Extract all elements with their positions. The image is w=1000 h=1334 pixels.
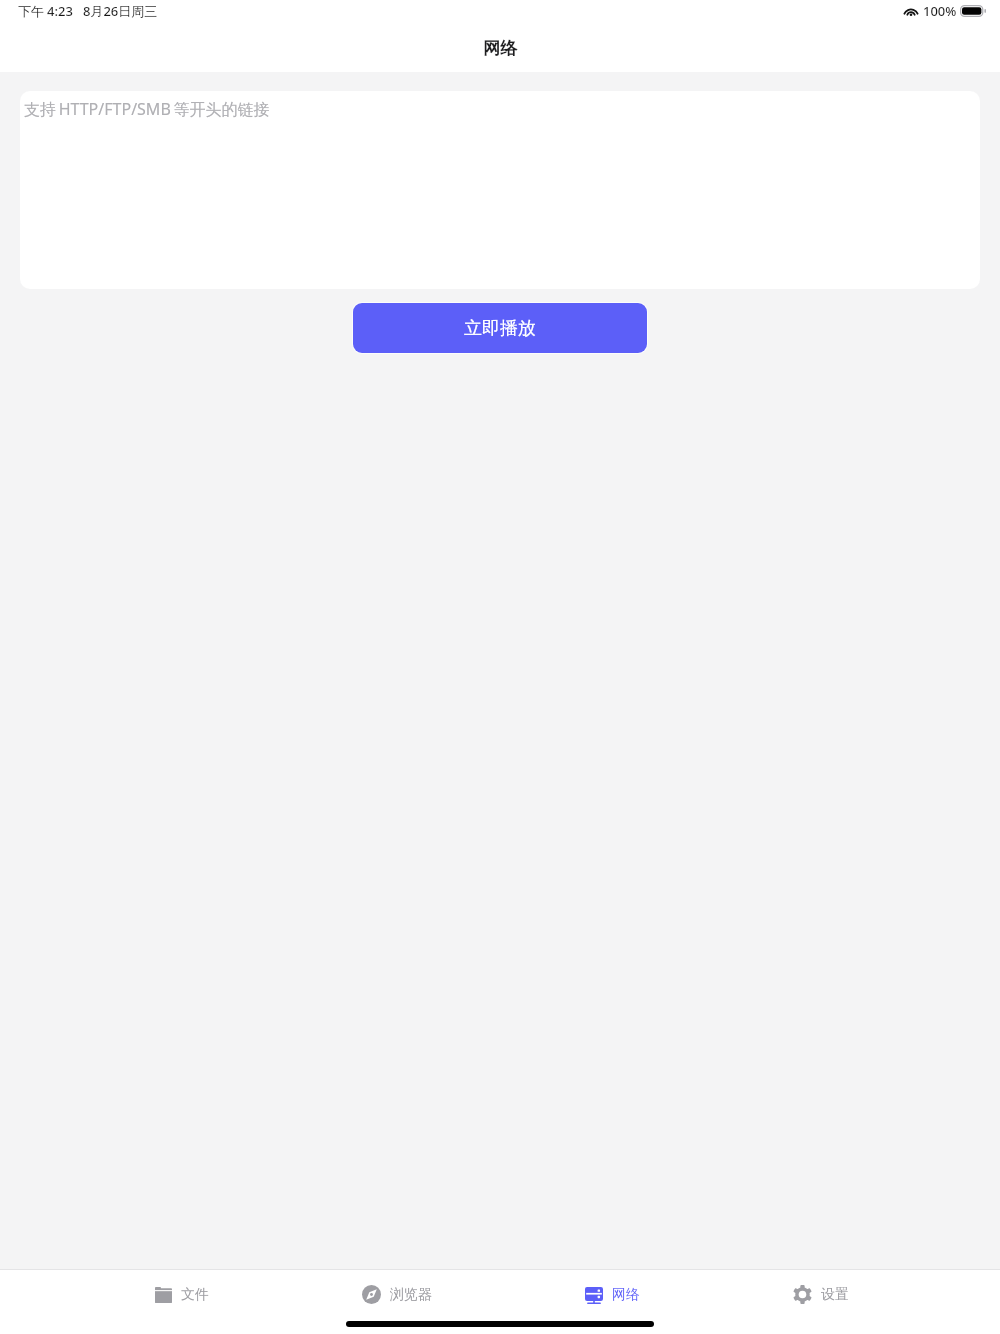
staticText: 网络 bbox=[612, 1286, 640, 1304]
staticText: 文件 bbox=[181, 1286, 209, 1304]
button[interactable]: Network bbox=[551, 1272, 674, 1318]
staticText: 4:23 bbox=[47, 2, 73, 20]
staticText: 立即播放 bbox=[464, 317, 536, 340]
button[interactable]: Settings bbox=[759, 1271, 883, 1318]
other: Settings bbox=[793, 1285, 812, 1304]
staticText: 100% bbox=[923, 2, 957, 20]
other: Network bbox=[585, 1287, 603, 1304]
staticText: 浏览器 bbox=[390, 1286, 432, 1304]
button[interactable]: Files bbox=[121, 1272, 243, 1318]
button[interactable]: Browser bbox=[328, 1271, 466, 1318]
button[interactable]: 支持 HTTP/FTP/SMB 等开头的链接 bbox=[20, 91, 980, 289]
staticText: 支持 HTTP/FTP/SMB 等开头的链接 bbox=[24, 98, 270, 120]
button[interactable]: 立即播放 bbox=[353, 303, 647, 353]
staticText: 设置 bbox=[821, 1286, 849, 1304]
staticText: 8月26日周三 bbox=[83, 2, 158, 20]
staticText: 网络 bbox=[483, 38, 517, 59]
staticText: 下午 bbox=[18, 3, 44, 19]
other: Browser bbox=[362, 1285, 381, 1304]
other: Files bbox=[155, 1287, 172, 1303]
